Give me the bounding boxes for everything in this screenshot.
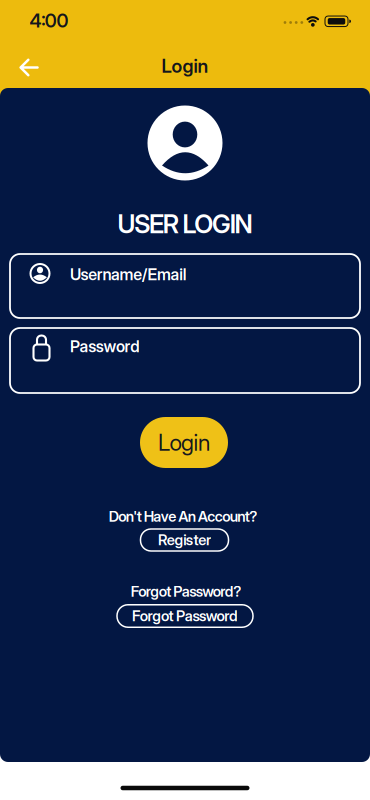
staticText: Don't Have An Account? <box>109 508 257 525</box>
staticText: Username/Email <box>70 265 187 284</box>
staticText: Forgot Password <box>132 607 238 625</box>
staticText: Login <box>158 429 210 456</box>
staticText: USER LOGIN <box>117 209 253 239</box>
staticText: Register <box>158 531 211 549</box>
staticText: Login <box>161 55 208 77</box>
staticText: Password <box>70 337 139 356</box>
staticText: Forgot Password? <box>131 583 241 600</box>
staticText: 4:00 <box>30 10 68 32</box>
